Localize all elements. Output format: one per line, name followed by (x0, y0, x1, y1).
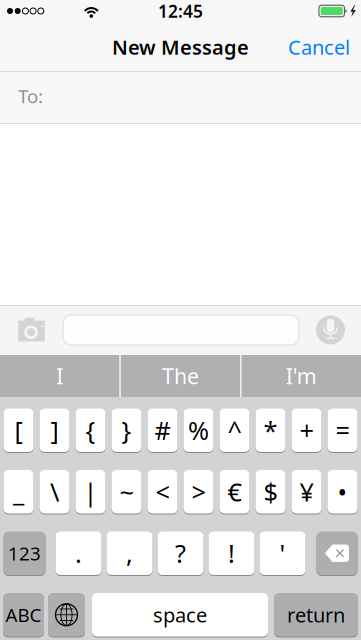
staticText: I'm (286, 362, 317, 390)
staticText: \ (50, 475, 59, 508)
staticText: • (337, 475, 347, 508)
button[interactable]: \ (39, 469, 69, 514)
staticText: [ (14, 413, 22, 447)
staticText: $ (263, 475, 277, 508)
button[interactable]: ¥ (291, 469, 321, 514)
button[interactable]: = (327, 408, 357, 452)
button[interactable]: Cancel (277, 25, 361, 69)
button[interactable]: < (147, 469, 177, 514)
button[interactable]: To: (0, 72, 361, 124)
staticText: ! (228, 536, 235, 570)
button[interactable]: I (0, 355, 119, 397)
button[interactable]: ] (39, 408, 69, 452)
button[interactable]: ^ (219, 408, 249, 452)
button[interactable]: . (55, 531, 101, 575)
button[interactable]: € (219, 469, 249, 514)
staticText: ^ (227, 413, 241, 447)
button[interactable]: ' (259, 531, 305, 575)
staticText: # (154, 413, 170, 447)
button[interactable]: 123 (3, 531, 45, 575)
staticText: ¥ (299, 475, 313, 508)
staticText: Cancel (288, 34, 350, 60)
button[interactable]: # (147, 408, 177, 452)
staticText: . (75, 536, 82, 570)
button[interactable]: ? (157, 531, 203, 575)
button[interactable]: + (291, 408, 321, 452)
staticText: To: (18, 84, 43, 108)
button[interactable]: [ (3, 408, 33, 452)
staticText: space (153, 601, 207, 628)
staticText: ~ (119, 475, 133, 508)
staticText: New Message (112, 34, 249, 60)
button[interactable]: I'm (242, 355, 361, 397)
staticText: ? (175, 536, 186, 570)
staticText: 123 (8, 541, 41, 566)
button[interactable]: Take photo (0, 305, 63, 355)
staticText: | (83, 475, 97, 508)
button[interactable]: ABC (3, 592, 44, 637)
button[interactable]: return (274, 592, 358, 637)
staticText: } (121, 413, 131, 447)
button[interactable]: > (183, 469, 213, 514)
staticText: 12:45 (158, 0, 203, 22)
button[interactable]: • (327, 469, 357, 514)
button[interactable]: _ (3, 469, 33, 514)
staticText: = (335, 413, 349, 447)
button[interactable]: Delete (316, 531, 357, 575)
button[interactable]: } (111, 408, 141, 452)
staticText: % (188, 413, 209, 447)
staticText: € (227, 475, 241, 508)
staticText: ] (50, 413, 58, 447)
button[interactable]: { (75, 408, 105, 452)
button[interactable]: , (106, 531, 152, 575)
button[interactable]: % (183, 408, 213, 452)
button[interactable]: ~ (111, 469, 141, 514)
button[interactable]: Next keyboard (48, 592, 85, 637)
staticText: , (126, 536, 133, 570)
staticText: ' (279, 536, 285, 570)
staticText: _ (13, 475, 24, 508)
button[interactable]: space (92, 592, 268, 637)
staticText: I (56, 362, 63, 390)
button[interactable]: ! (208, 531, 254, 575)
staticText: > (191, 475, 205, 508)
button[interactable]: * (255, 408, 285, 452)
staticText: < (155, 475, 169, 508)
staticText: return (287, 601, 345, 628)
staticText: { (85, 413, 95, 447)
staticText: ABC (5, 602, 41, 627)
staticText: + (299, 413, 313, 447)
button[interactable]: $ (255, 469, 285, 514)
button[interactable]: Dictate (316, 305, 361, 355)
staticText: The (162, 362, 199, 390)
button[interactable]: | (75, 469, 105, 514)
staticText: * (263, 413, 277, 447)
button[interactable]: The (121, 355, 240, 397)
